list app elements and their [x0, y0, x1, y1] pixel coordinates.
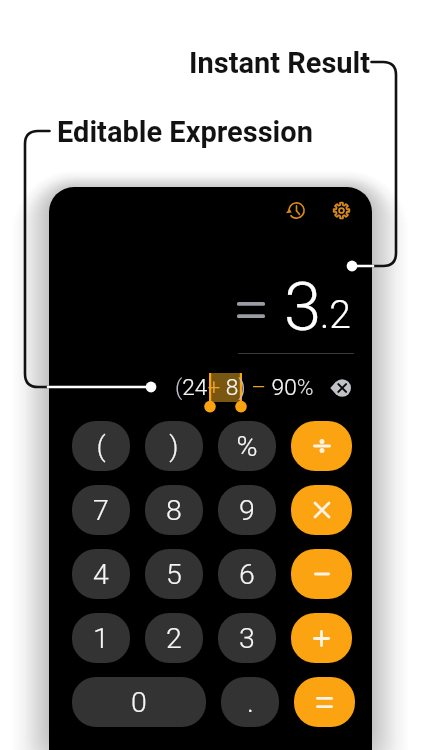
- staticText: %: [236, 430, 258, 463]
- button[interactable]: 5: [145, 549, 203, 599]
- button[interactable]: 3: [218, 613, 276, 663]
- staticText: 4: [93, 558, 109, 591]
- staticText: Editable Expression: [57, 115, 313, 149]
- button[interactable]: 7: [72, 485, 130, 535]
- button[interactable]: (: [72, 421, 130, 471]
- staticText: 1: [93, 622, 109, 655]
- button[interactable]: %: [218, 421, 276, 471]
- button[interactable]: [291, 613, 352, 663]
- staticText: ): [169, 430, 179, 463]
- button[interactable]: [291, 485, 352, 535]
- button[interactable]: 1: [72, 613, 130, 663]
- staticText: 7: [93, 494, 109, 527]
- button[interactable]: ): [145, 421, 203, 471]
- button[interactable]: [294, 677, 355, 727]
- staticText: 0: [131, 686, 147, 719]
- staticText: 5: [166, 558, 182, 591]
- staticText: .: [247, 686, 254, 719]
- staticText: 2: [166, 622, 182, 655]
- staticText: .2: [320, 292, 351, 338]
- button[interactable]: .: [221, 677, 279, 727]
- staticText: (: [96, 430, 106, 463]
- button[interactable]: 6: [218, 549, 276, 599]
- button[interactable]: Backspace: [326, 374, 354, 402]
- button[interactable]: Settings: [324, 193, 358, 227]
- button[interactable]: [291, 421, 352, 471]
- button[interactable]: 9: [218, 485, 276, 535]
- staticText: (24+ 8) – 90%: [175, 374, 314, 401]
- button[interactable]: History: [279, 193, 313, 227]
- staticText: 3: [239, 622, 255, 655]
- button[interactable]: 4: [72, 549, 130, 599]
- staticText: 8: [166, 494, 182, 527]
- button[interactable]: 0: [72, 677, 206, 727]
- staticText: 9: [239, 494, 255, 527]
- staticText: 3: [284, 268, 322, 347]
- button[interactable]: 8: [145, 485, 203, 535]
- staticText: 6: [239, 558, 255, 591]
- button[interactable]: 2: [145, 613, 203, 663]
- staticText: Instant Result: [189, 46, 371, 80]
- button[interactable]: [291, 549, 352, 599]
